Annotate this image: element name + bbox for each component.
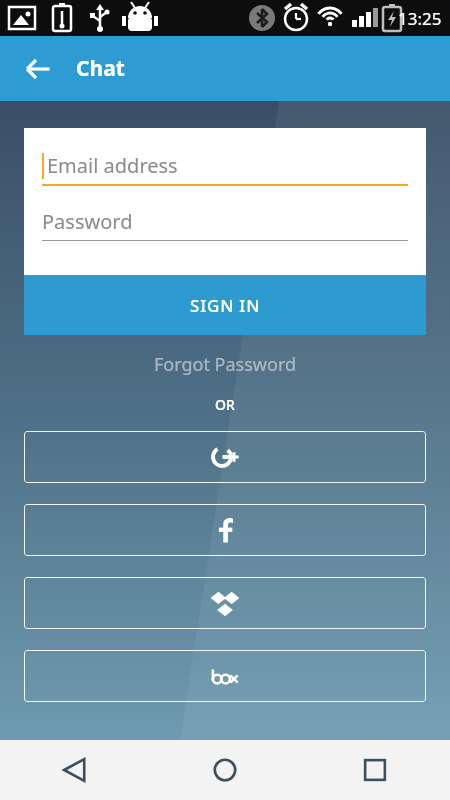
staticText: SIGN IN [190,294,261,317]
button[interactable]: Forgot Password [0,345,450,383]
staticText: Chat [76,54,125,83]
staticText: Password [42,208,133,235]
button[interactable]: Sign in with Google Plus [24,431,426,483]
button[interactable]: Back [14,45,62,93]
button[interactable]: Recents [300,740,450,800]
button[interactable]: Sign in with Facebook [24,504,426,556]
button[interactable]: Sign in with Box [24,650,426,702]
staticText: 13:25 [398,7,442,30]
button[interactable]: SIGN IN [24,275,426,335]
staticText: Forgot Password [154,352,297,377]
staticText: Email address [47,152,178,179]
button[interactable]: Home [150,740,300,800]
button[interactable]: Back [0,740,150,800]
button[interactable]: Sign in with Dropbox [24,577,426,629]
staticText: OR [215,395,235,414]
